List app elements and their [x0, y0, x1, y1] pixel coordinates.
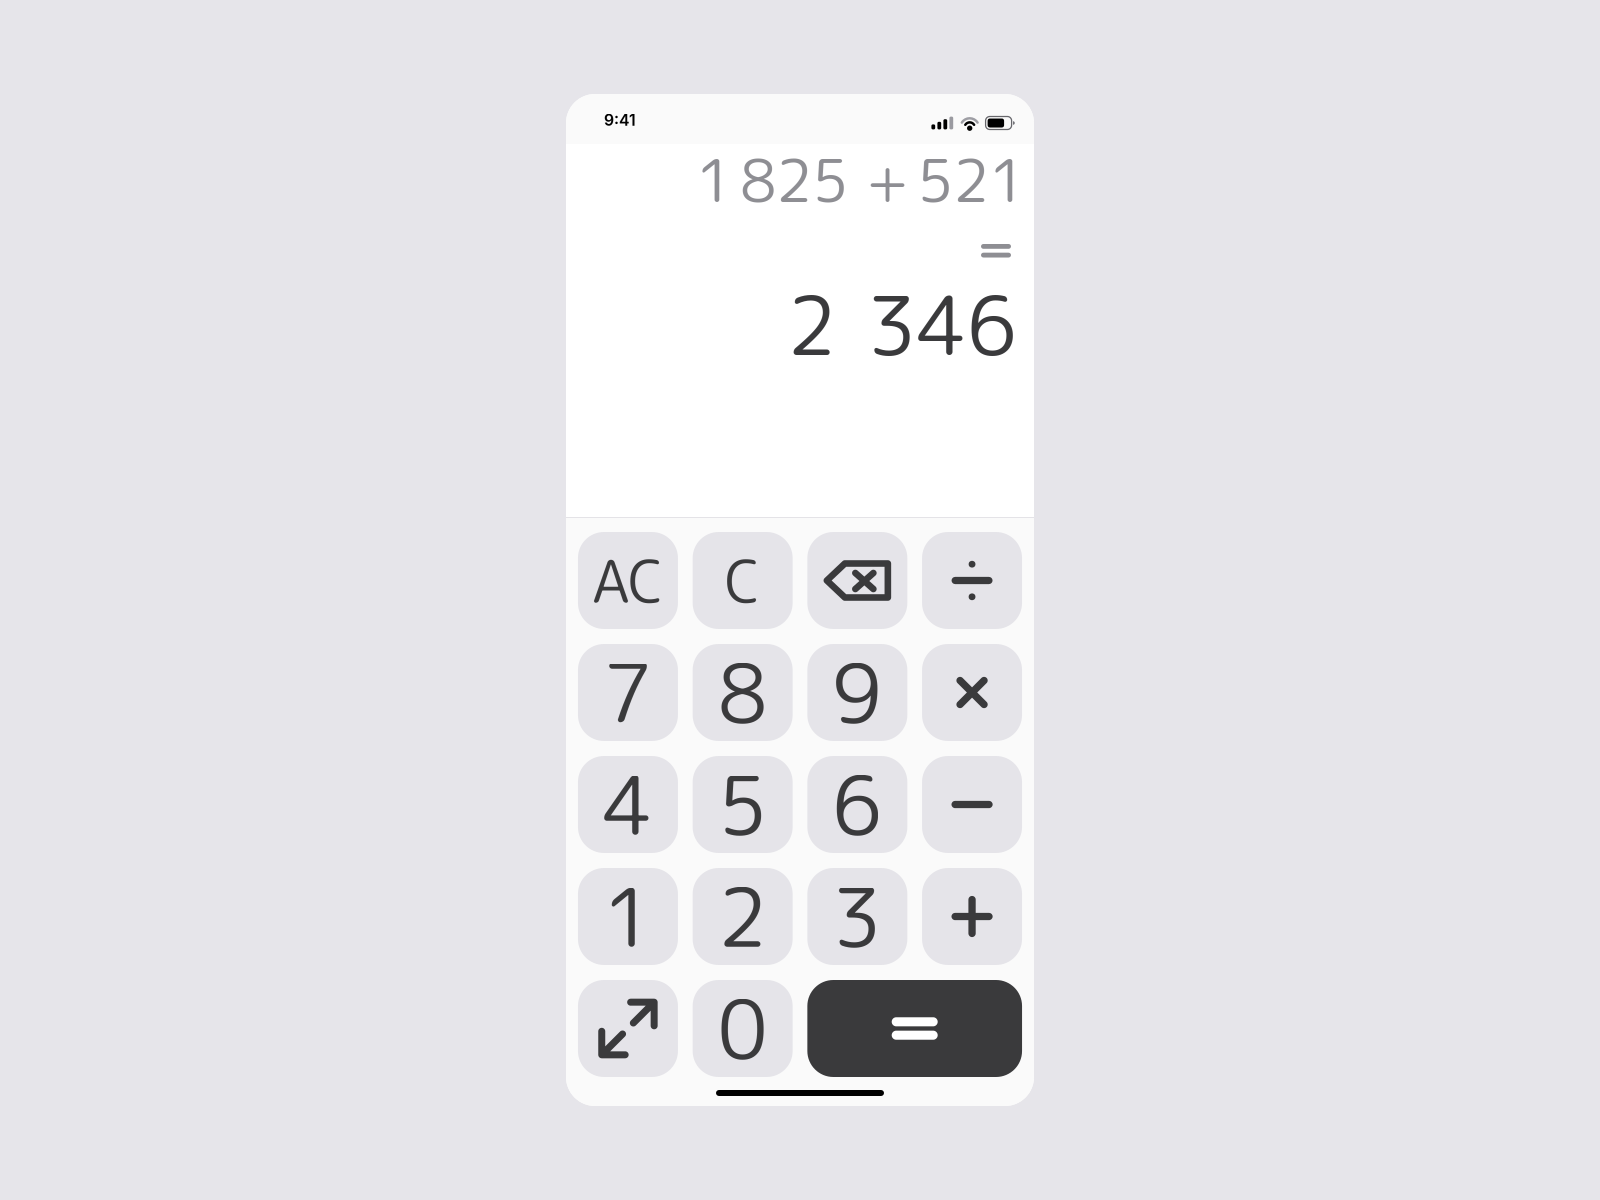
staticText: 825: [740, 139, 848, 221]
staticText: 9: [832, 637, 882, 748]
button[interactable]: Expand: [578, 980, 678, 1077]
staticText: 346: [867, 269, 1017, 381]
button[interactable]: 0: [693, 980, 793, 1077]
button[interactable]: C: [693, 532, 793, 629]
staticText: 5: [718, 749, 768, 860]
staticText: AC: [592, 540, 664, 621]
staticText: 6: [832, 749, 882, 860]
button[interactable]: 3: [807, 868, 907, 965]
staticText: 521: [917, 139, 1025, 221]
button[interactable]: 1: [578, 868, 678, 965]
button[interactable]: 6: [807, 756, 907, 853]
staticText: 2: [718, 861, 768, 972]
staticText: 1: [696, 139, 732, 221]
button[interactable]: Equals: [807, 980, 1022, 1077]
staticText: 1: [603, 861, 653, 972]
button[interactable]: 4: [578, 756, 678, 853]
staticText: C: [725, 540, 761, 621]
staticText: 3: [832, 861, 882, 972]
button[interactable]: Delete: [807, 532, 907, 629]
button[interactable]: 7: [578, 644, 678, 741]
button[interactable]: Multiply: [922, 644, 1022, 741]
button[interactable]: Plus: [922, 868, 1022, 965]
button[interactable]: 8: [693, 644, 793, 741]
staticText: 8: [718, 637, 768, 748]
button[interactable]: Divide: [922, 532, 1022, 629]
staticText: +: [866, 139, 909, 221]
button[interactable]: 5: [693, 756, 793, 853]
button[interactable]: 9: [807, 644, 907, 741]
staticText: 7: [603, 637, 653, 748]
staticText: 0: [718, 973, 768, 1084]
button[interactable]: 2: [693, 868, 793, 965]
staticText: 2: [787, 269, 837, 381]
staticText: 4: [603, 749, 653, 860]
button[interactable]: AC: [578, 532, 678, 629]
staticText: 9:41: [604, 110, 636, 129]
button[interactable]: Minus: [922, 756, 1022, 853]
